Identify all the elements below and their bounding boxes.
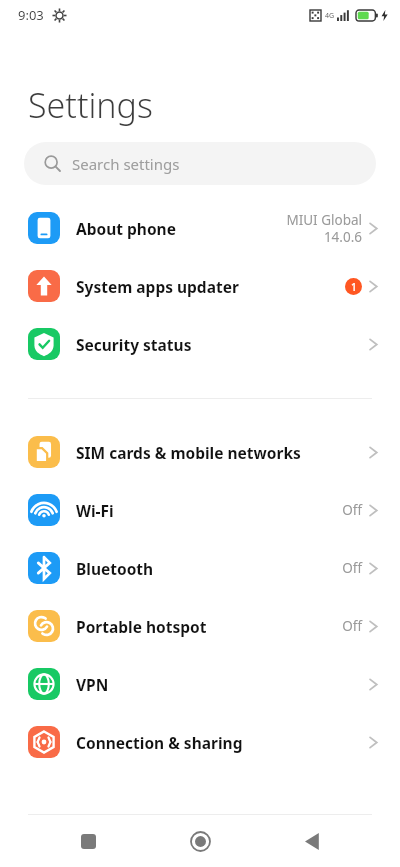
staticText: VPN [76,674,109,695]
staticText: Portable hotspot [76,616,207,637]
button[interactable]: Wi-Fi [0,481,400,539]
staticText: Off [342,559,362,577]
button[interactable]: Security status [0,315,400,373]
staticText: About phone [76,218,176,239]
staticText: Wi-Fi [76,500,114,521]
staticText: Off [342,501,362,519]
staticText: Bluetooth [76,558,154,579]
button[interactable]: Back [288,817,336,865]
staticText: Security status [76,334,192,355]
button[interactable]: Connection & sharing [0,713,400,771]
staticText: Search settings [72,154,180,174]
button[interactable]: About phone [0,199,400,257]
button[interactable]: System apps updater [0,257,400,315]
button[interactable]: SIM cards & mobile networks [0,423,400,481]
button[interactable]: Search settings [24,142,376,185]
button[interactable]: Bluetooth [0,539,400,597]
staticText: Connection & sharing [76,732,243,753]
button[interactable]: Home [176,817,224,865]
staticText: Off [342,617,362,635]
staticText: 4G [325,11,335,21]
staticText: 9:03 [18,6,44,24]
staticText: System apps updater [76,276,239,297]
button[interactable]: Portable hotspot [0,597,400,655]
button[interactable]: VPN [0,655,400,713]
staticText: Settings [28,82,153,128]
staticText: SIM cards & mobile networks [76,442,301,463]
button[interactable]: Recent apps [64,817,112,865]
staticText: 1 [351,280,357,294]
staticText: MIUI Global 14.0.6 [286,211,362,246]
